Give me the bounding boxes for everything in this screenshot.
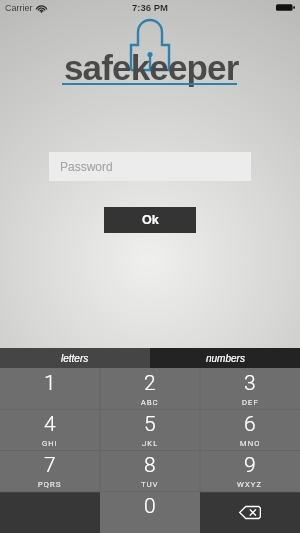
button[interactable]: 0 [100,492,200,533]
staticText: 8 [144,453,156,478]
staticText: 7:36 PM [132,2,168,13]
staticText: numbers [206,353,245,364]
button[interactable]: letters [0,348,150,368]
button[interactable]: numbers [150,348,300,368]
staticText: 7 [44,453,56,478]
staticText: Ok [142,213,159,227]
button[interactable]: 7 [0,451,100,492]
staticText: ABC [141,398,159,407]
button[interactable]: 1 [0,368,100,410]
button[interactable]: 8 [100,451,200,492]
staticText: safekeeper [64,48,239,87]
button[interactable]: Password [49,152,251,181]
button[interactable]: 6 [200,410,300,451]
staticText: WXYZ [237,480,263,489]
button[interactable]: 2 [100,368,200,410]
button[interactable]: 3 [200,368,300,410]
button[interactable]: 4 [0,410,100,451]
staticText: MNO [240,439,261,448]
staticText: 1 [44,371,56,396]
staticText: PQRS [38,480,62,489]
staticText: 3 [244,371,256,396]
staticText: Password [60,160,113,173]
staticText: JKL [142,439,159,448]
staticText: 4 [44,412,56,437]
button[interactable]: 9 [200,451,300,492]
staticText: GHI [42,439,59,448]
staticText: 5 [144,412,156,437]
staticText: letters [61,353,89,364]
staticText: 2 [144,371,156,396]
staticText: 0 [144,494,156,519]
button[interactable]: Backspace [200,492,300,533]
button[interactable]: Ok [104,207,196,233]
staticText: 9 [244,453,256,478]
button[interactable]: 5 [100,410,200,451]
staticText: Carrier [5,3,33,13]
staticText: DEF [242,398,259,407]
staticText: 6 [244,412,256,437]
staticText: TUV [141,480,159,489]
